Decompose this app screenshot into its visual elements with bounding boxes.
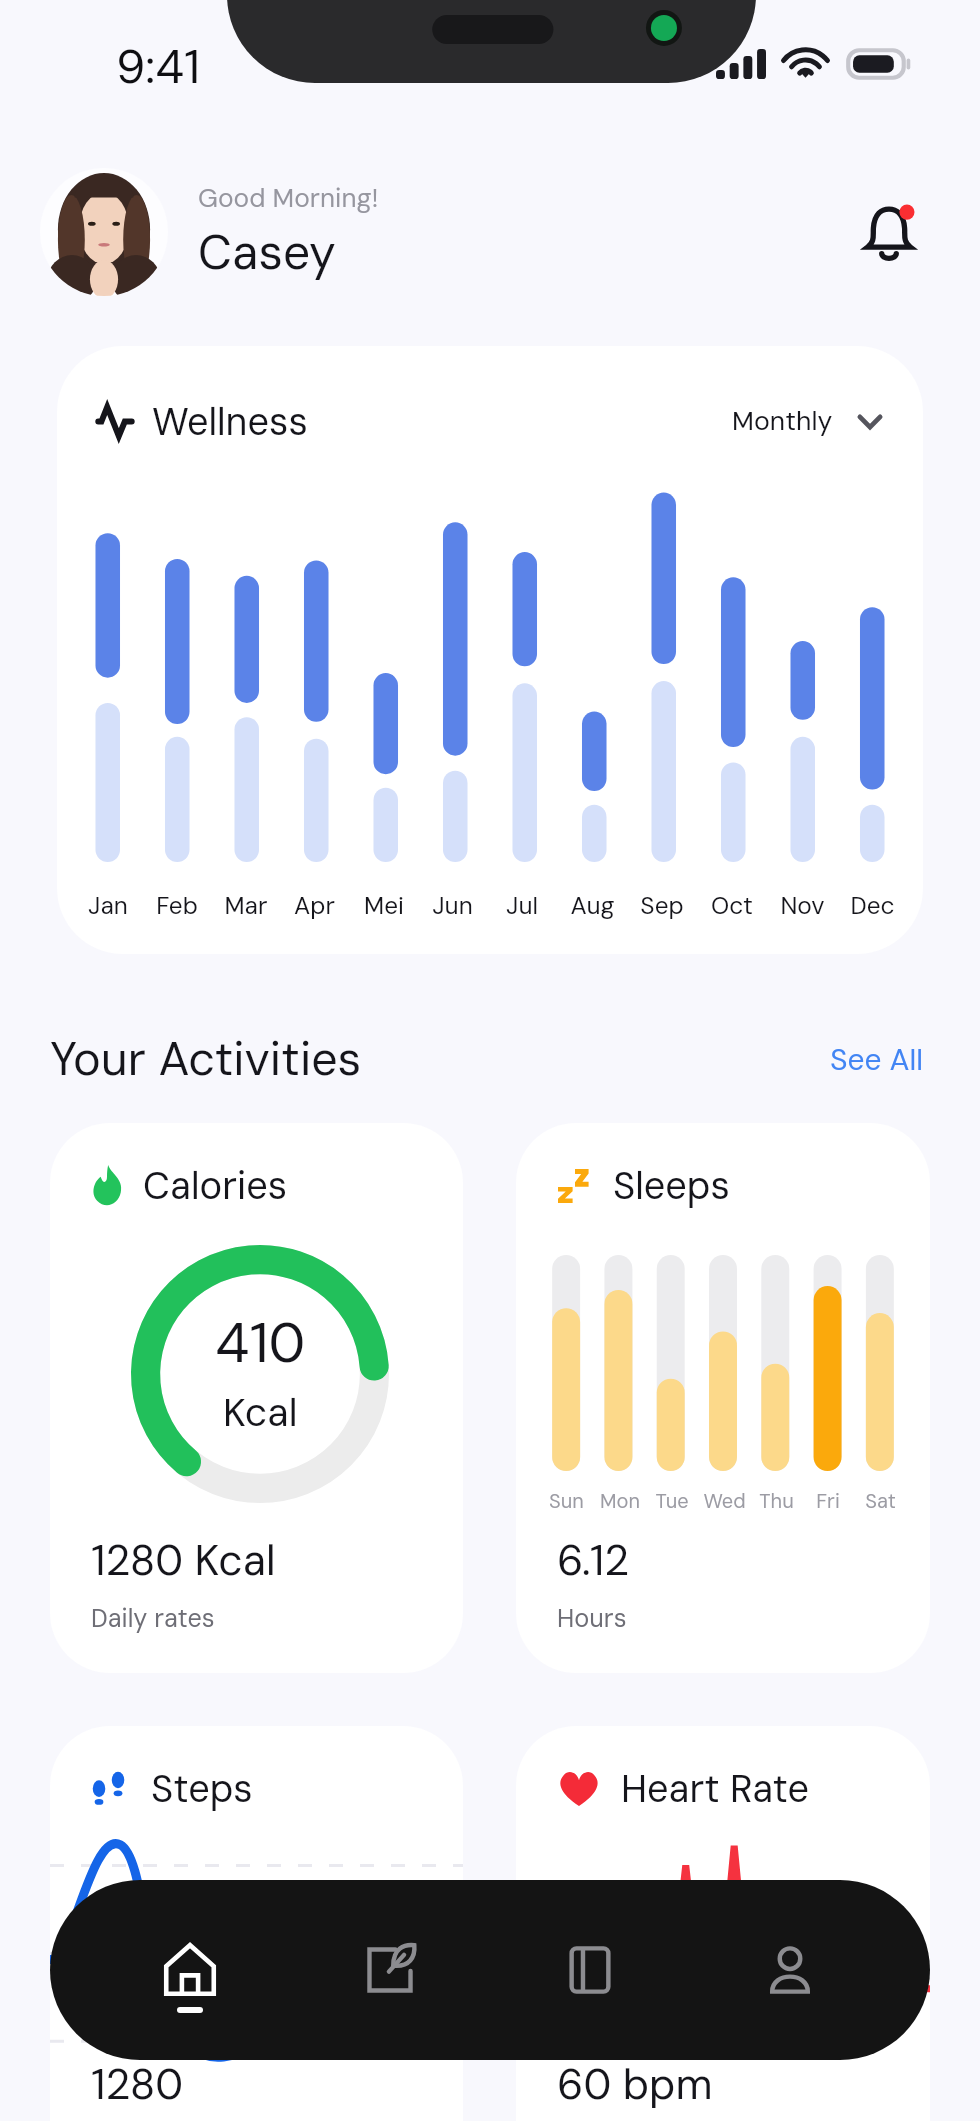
staticText: 1280	[91, 2057, 184, 2112]
staticText: Feb	[156, 890, 198, 922]
button[interactable]: Steps	[50, 1726, 463, 2121]
staticText: Sleeps	[613, 1161, 730, 1210]
staticText: Wellness	[152, 397, 308, 446]
staticText: 6.12	[557, 1533, 630, 1588]
staticText: Jun	[432, 890, 473, 922]
button[interactable]: Home	[90, 1880, 290, 2060]
staticText: Sep	[640, 890, 684, 922]
staticText: Fri	[816, 1488, 840, 1514]
button[interactable]: See All	[826, 1028, 928, 1091]
button[interactable]: Calories	[50, 1123, 463, 1673]
staticText: Your Activities	[50, 1029, 362, 1090]
staticText: Oct	[711, 890, 753, 922]
button[interactable]: Nutrition	[290, 1880, 490, 2060]
staticText: 1280 Kcal	[91, 1533, 276, 1588]
button[interactable]: Sleeps	[516, 1123, 930, 1673]
staticText: Aug	[570, 890, 615, 922]
staticText: Thu	[759, 1488, 794, 1514]
staticText: Mar	[224, 890, 268, 922]
staticText: Sat	[865, 1488, 896, 1514]
staticText: Dec	[850, 890, 895, 922]
staticText: Jul	[506, 890, 538, 922]
staticText: Hours	[557, 1602, 627, 1635]
staticText: Mei	[364, 890, 404, 922]
staticText: Casey	[198, 221, 336, 283]
staticText: Jan	[88, 890, 128, 922]
staticText: Sun	[549, 1488, 584, 1514]
staticText: Good Morning!	[198, 181, 379, 215]
button[interactable]: Profile photo	[40, 168, 168, 296]
staticText: See All	[830, 1040, 924, 1079]
staticText: Daily rates	[91, 1602, 215, 1635]
staticText: 410	[215, 1306, 306, 1379]
staticText: 60 bpm	[557, 2057, 713, 2112]
staticText: Steps	[151, 1764, 253, 1813]
staticText: Tue	[655, 1488, 689, 1514]
staticText: Mon	[600, 1488, 640, 1514]
button[interactable]: Monthly	[732, 396, 883, 447]
button[interactable]: Profile	[690, 1880, 890, 2060]
staticText: Nov	[780, 890, 825, 922]
staticText: 9:41	[116, 36, 201, 97]
button[interactable]: Heart Rate	[516, 1726, 930, 2121]
staticText: Heart Rate	[621, 1764, 809, 1813]
button[interactable]: Notifications	[853, 196, 925, 268]
button[interactable]: Library	[490, 1880, 690, 2060]
staticText: Kcal	[223, 1387, 298, 1438]
staticText: Monthly	[732, 404, 833, 439]
staticText: Wed	[703, 1488, 746, 1514]
staticText: Calories	[143, 1161, 287, 1210]
staticText: Apr	[294, 890, 335, 922]
